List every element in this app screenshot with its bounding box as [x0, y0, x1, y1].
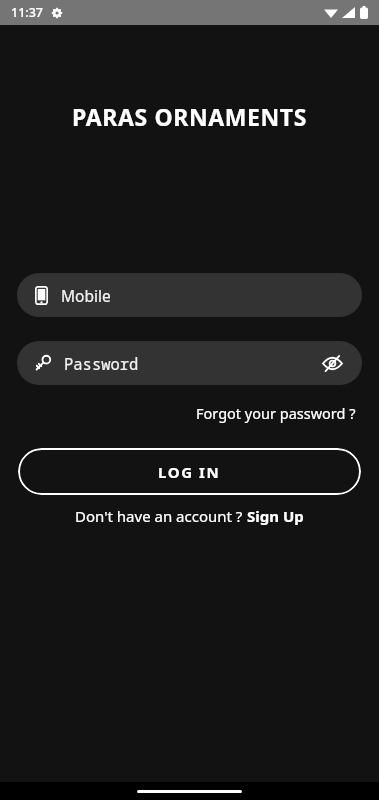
button[interactable]: Show password [316, 347, 348, 379]
button[interactable]: Forgot your password ? [190, 399, 362, 427]
button[interactable]: Password [17, 341, 362, 385]
staticText: Forgot your password ? [196, 403, 356, 423]
staticText: Password [64, 353, 316, 374]
button[interactable]: LOG IN [18, 448, 361, 495]
staticText: Sign Up [247, 506, 304, 526]
staticText: PARAS ORNAMENTS [0, 101, 379, 132]
staticText: LOG IN [158, 462, 221, 482]
staticText: Mobile [61, 285, 111, 306]
button[interactable]: Don't have an account ? [0, 506, 379, 526]
staticText: 11:37 [11, 4, 44, 21]
staticText: Don't have an account ? [75, 506, 247, 526]
button[interactable]: Mobile [17, 273, 362, 317]
